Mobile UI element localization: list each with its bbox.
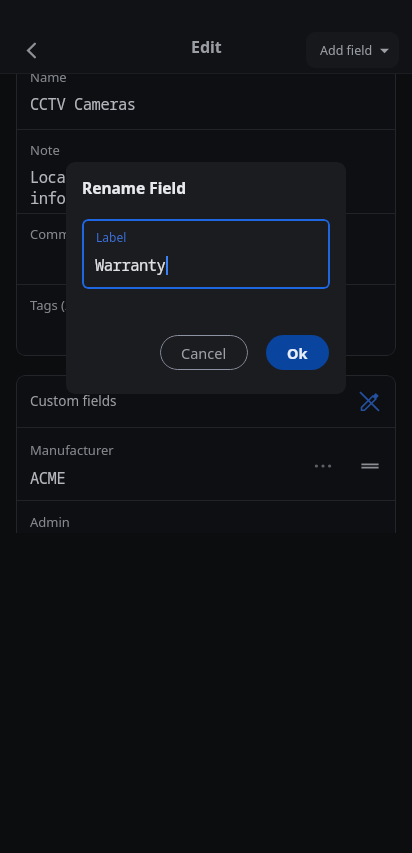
staticText: Edit <box>191 36 222 58</box>
button[interactable]: Note <box>16 130 396 213</box>
staticText: Warranty <box>95 254 166 275</box>
staticText: Comments <box>30 225 97 243</box>
staticText: Ok <box>287 343 308 363</box>
staticText: Admin <box>30 513 70 531</box>
staticText: ACME <box>30 467 66 488</box>
staticText: Manufacturer <box>30 441 114 459</box>
button[interactable]: Stop editing <box>354 386 384 416</box>
staticText: Tags (2) <box>30 296 77 314</box>
staticText: Rename Field <box>82 177 186 198</box>
staticText: Custom fields <box>30 392 117 410</box>
button[interactable]: More options <box>308 451 338 481</box>
staticText: Add field <box>320 42 373 59</box>
staticText: Name <box>30 68 67 86</box>
button[interactable]: Tags (2) <box>16 285 396 356</box>
button[interactable]: Admin <box>16 501 396 532</box>
staticText: Label <box>96 229 127 245</box>
staticText: Cancel <box>181 343 227 363</box>
button[interactable]: Cancel <box>160 335 248 370</box>
button[interactable]: Comments <box>16 214 396 284</box>
button[interactable]: Manufacturer <box>16 428 396 500</box>
button[interactable]: Ok <box>266 335 329 370</box>
staticText: Local <box>30 166 75 187</box>
staticText: info <box>30 187 66 208</box>
button[interactable]: Name <box>16 57 396 129</box>
staticText: CCTV Cameras <box>30 93 136 114</box>
staticText: Note <box>30 141 60 159</box>
button[interactable]: Back <box>14 33 48 67</box>
button[interactable]: Label <box>82 219 330 289</box>
button[interactable]: Add field <box>306 32 399 68</box>
button[interactable]: Reorder <box>355 451 385 481</box>
